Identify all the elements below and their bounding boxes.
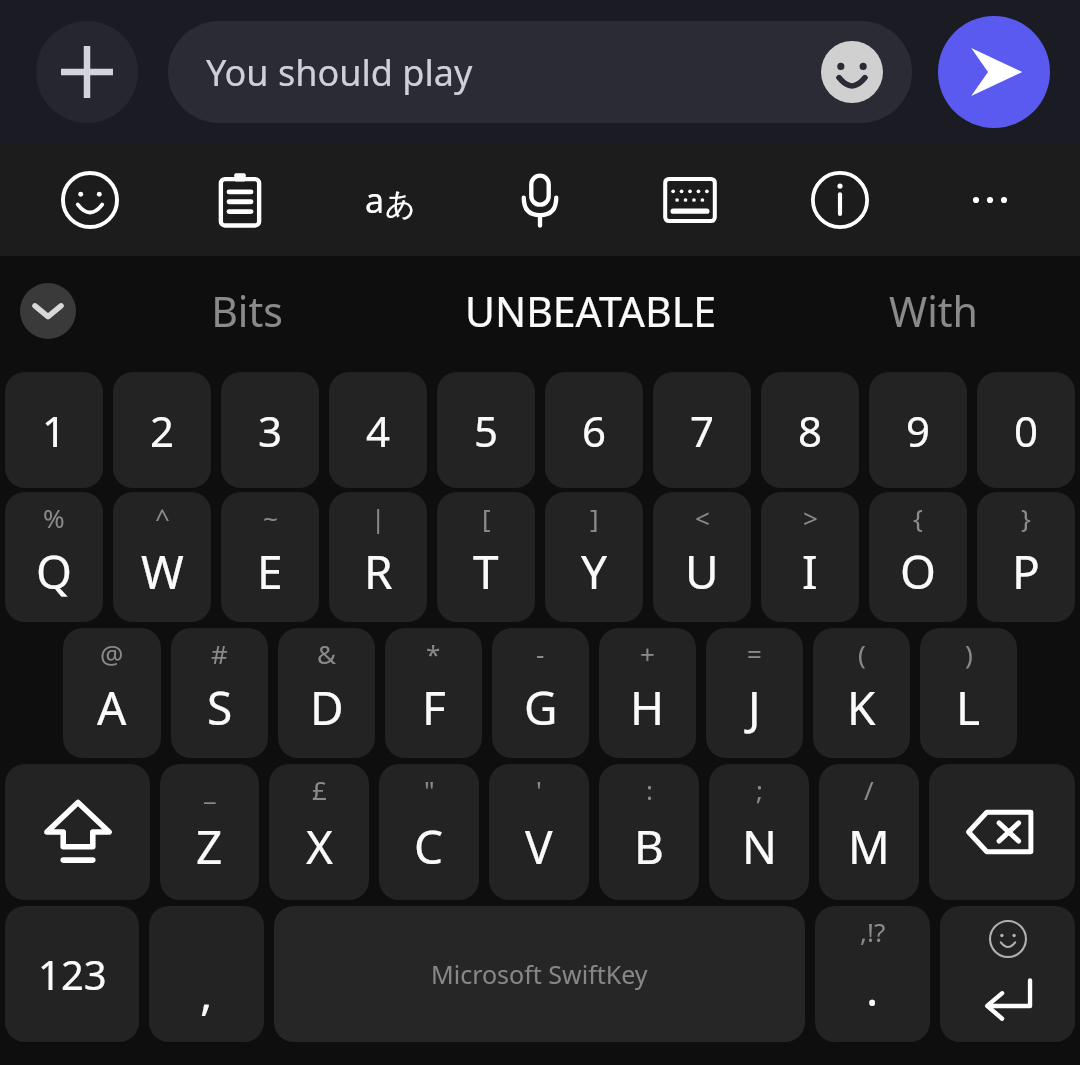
staticText: M xyxy=(848,815,890,878)
button[interactable]: { xyxy=(869,492,967,622)
staticText: # xyxy=(211,636,228,671)
button[interactable]: Send xyxy=(938,16,1050,128)
button[interactable]: ~ xyxy=(221,492,319,622)
button[interactable]: Keyboard mode xyxy=(646,156,734,244)
button[interactable]: / xyxy=(819,764,919,900)
button[interactable]: } xyxy=(977,492,1075,622)
button[interactable]: You should play xyxy=(168,21,912,123)
button[interactable]: Bits xyxy=(100,256,394,366)
button[interactable]: ] xyxy=(545,492,643,622)
staticText: ; xyxy=(756,772,763,807)
staticText: N xyxy=(742,815,777,878)
button[interactable]: Space xyxy=(274,906,805,1042)
button[interactable]: < xyxy=(653,492,751,622)
button[interactable]: # xyxy=(171,628,268,758)
button[interactable]: , xyxy=(149,906,264,1042)
staticText: L xyxy=(956,676,981,739)
button[interactable]: 3 xyxy=(221,372,319,488)
button[interactable]: 5 xyxy=(437,372,535,488)
button[interactable]: | xyxy=(329,492,427,622)
staticText: I xyxy=(802,540,818,603)
staticText: - xyxy=(536,636,545,671)
staticText: S xyxy=(207,676,233,739)
staticText: E xyxy=(257,540,283,603)
button[interactable]: - xyxy=(492,628,589,758)
button[interactable]: @ xyxy=(63,628,161,758)
button[interactable]: 1 xyxy=(5,372,103,488)
staticText: 9 xyxy=(906,402,931,459)
staticText: a xyxy=(365,177,385,223)
staticText: J xyxy=(748,676,761,739)
button[interactable]: Backspace xyxy=(929,764,1075,900)
staticText: * xyxy=(426,636,441,671)
button[interactable]: > xyxy=(761,492,859,622)
staticText: } xyxy=(1021,500,1031,535)
button[interactable]: 9 xyxy=(869,372,967,488)
staticText: B xyxy=(634,815,664,878)
button[interactable]: ' xyxy=(489,764,589,900)
staticText: Bits xyxy=(211,283,283,339)
button[interactable]: 8 xyxy=(761,372,859,488)
button[interactable]: £ xyxy=(269,764,369,900)
button[interactable]: 2 xyxy=(113,372,211,488)
staticText: Microsoft SwiftKey xyxy=(431,957,648,991)
button[interactable]: * xyxy=(385,628,482,758)
button[interactable]: Voice input xyxy=(496,156,584,244)
staticText: % xyxy=(43,500,65,535)
button[interactable]: Emoji xyxy=(46,156,134,244)
button[interactable]: Add attachment xyxy=(36,21,138,123)
button[interactable]: Emoji xyxy=(820,40,884,104)
staticText: " xyxy=(424,772,435,807)
staticText: 123 xyxy=(38,947,107,1001)
staticText: . xyxy=(866,957,879,1020)
button[interactable]: ; xyxy=(709,764,809,900)
button[interactable]: ) xyxy=(920,628,1017,758)
button[interactable]: Enter xyxy=(940,906,1075,1042)
button[interactable]: ,!? xyxy=(815,906,930,1042)
staticText: C xyxy=(414,815,444,878)
button[interactable]: = xyxy=(706,628,803,758)
staticText: 6 xyxy=(582,402,607,459)
staticText: > xyxy=(803,500,818,535)
staticText: 4 xyxy=(366,402,391,459)
button[interactable]: Translate xyxy=(346,156,434,244)
staticText: Y xyxy=(581,540,608,603)
button[interactable]: [ xyxy=(437,492,535,622)
staticText: ' xyxy=(536,772,542,807)
staticText: ,!? xyxy=(860,914,886,949)
button[interactable]: ^ xyxy=(113,492,211,622)
staticText: + xyxy=(640,636,655,671)
button[interactable]: 0 xyxy=(977,372,1075,488)
button[interactable]: " xyxy=(379,764,479,900)
staticText: D xyxy=(310,676,344,739)
button[interactable]: _ xyxy=(160,764,259,900)
button[interactable]: + xyxy=(599,628,696,758)
staticText: H xyxy=(630,676,665,739)
button[interactable]: ( xyxy=(813,628,910,758)
staticText: / xyxy=(864,772,874,807)
staticText: W xyxy=(141,540,184,603)
button[interactable]: : xyxy=(599,764,699,900)
button[interactable]: 4 xyxy=(329,372,427,488)
button[interactable]: & xyxy=(278,628,375,758)
button[interactable]: 123 xyxy=(5,906,139,1042)
button[interactable]: % xyxy=(5,492,103,622)
staticText: = xyxy=(747,636,762,671)
button[interactable]: Hide suggestions xyxy=(20,283,76,339)
staticText: 3 xyxy=(258,402,283,459)
button[interactable]: UNBEATABLE xyxy=(394,256,786,366)
staticText: 7 xyxy=(690,402,715,459)
button[interactable]: 7 xyxy=(653,372,751,488)
staticText: U xyxy=(685,540,719,603)
button[interactable]: More options xyxy=(946,156,1034,244)
staticText: V xyxy=(525,815,553,878)
staticText: ~ xyxy=(263,500,278,535)
staticText: _ xyxy=(204,772,216,807)
staticText: @ xyxy=(100,636,124,671)
button[interactable]: Info xyxy=(796,156,884,244)
staticText: あ xyxy=(385,185,416,223)
button[interactable]: 6 xyxy=(545,372,643,488)
button[interactable]: With xyxy=(786,256,1080,366)
button[interactable]: Shift xyxy=(5,764,150,900)
button[interactable]: Clipboard xyxy=(196,156,284,244)
